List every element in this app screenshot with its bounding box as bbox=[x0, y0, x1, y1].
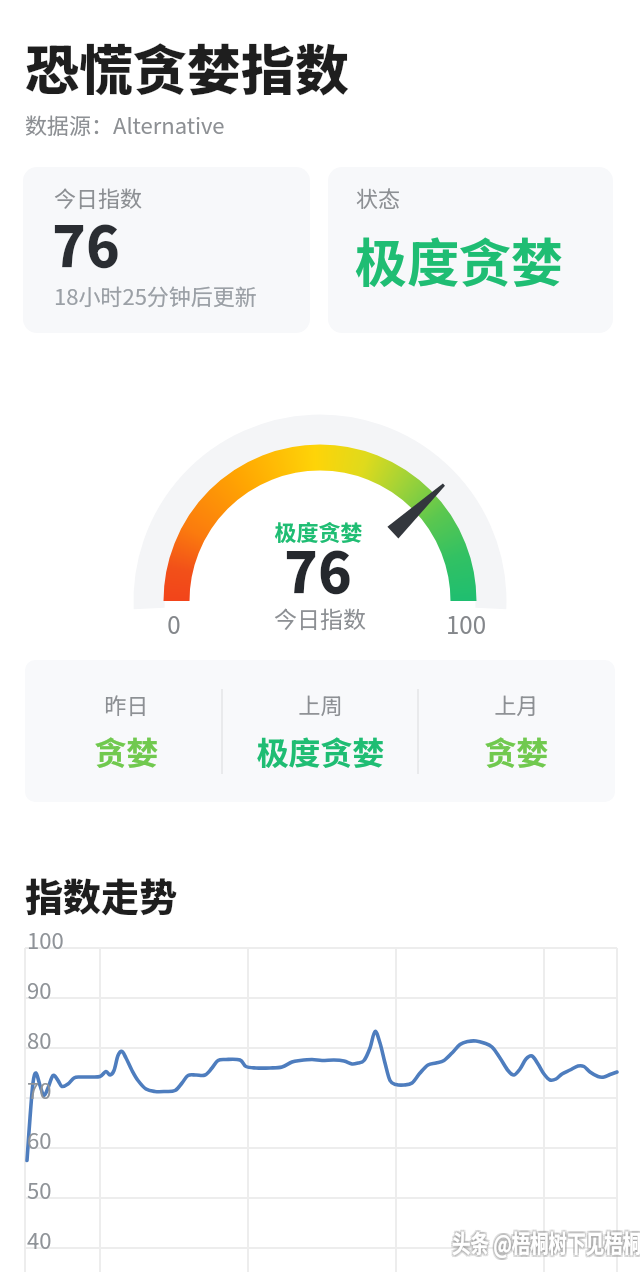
staticText: 100 bbox=[27, 923, 64, 955]
staticText: 今日指数 bbox=[54, 181, 143, 213]
staticText: 今日指数 bbox=[274, 601, 366, 634]
staticText: 贪婪 bbox=[94, 728, 159, 774]
staticText: 指数走势 bbox=[25, 867, 178, 922]
staticText: 80 bbox=[27, 1023, 52, 1055]
staticText: 状态 bbox=[356, 181, 401, 213]
staticText: 70 bbox=[27, 1073, 52, 1105]
staticText: 上月 bbox=[494, 688, 539, 720]
staticText: 头条 @梧桐树下见梧桐 bbox=[453, 1222, 640, 1258]
staticText: 90 bbox=[27, 973, 52, 1005]
staticText: 100 bbox=[446, 606, 486, 641]
staticText: 0 bbox=[167, 606, 181, 641]
button[interactable] bbox=[25, 660, 615, 802]
staticText: 上周 bbox=[298, 688, 343, 720]
staticText: 头条 @梧桐树下见梧桐 bbox=[452, 1226, 640, 1262]
staticText: 极度贪婪 bbox=[355, 222, 564, 297]
staticText: 60 bbox=[27, 1123, 52, 1155]
staticText: 头条 @梧桐树下见梧桐 bbox=[452, 1222, 640, 1258]
staticText: 恐慌贪婪指数 bbox=[25, 27, 349, 105]
staticText: 76 bbox=[284, 528, 352, 609]
button[interactable] bbox=[328, 167, 613, 333]
staticText: 头条 @梧桐树下见梧桐 bbox=[450, 1224, 640, 1260]
staticText: 18小时25分钟后更新 bbox=[54, 279, 257, 311]
staticText: 头条 @梧桐树下见梧桐 bbox=[452, 1224, 640, 1260]
staticText: 40 bbox=[27, 1223, 52, 1255]
button[interactable] bbox=[23, 167, 310, 333]
staticText: 极度贪婪 bbox=[274, 515, 363, 547]
staticText: 头条 @梧桐树下见梧桐 bbox=[453, 1224, 640, 1260]
staticText: 头条 @梧桐树下见梧桐 bbox=[450, 1222, 640, 1258]
staticText: 头条 @梧桐树下见梧桐 bbox=[453, 1226, 640, 1262]
staticText: 头条 @梧桐树下见梧桐 bbox=[450, 1226, 640, 1262]
staticText: 76 bbox=[52, 202, 120, 283]
staticText: 贪婪 bbox=[484, 728, 549, 774]
staticText: 极度贪婪 bbox=[256, 728, 385, 774]
staticText: 昨日 bbox=[104, 688, 149, 720]
staticText: 50 bbox=[27, 1173, 52, 1205]
staticText: 数据源：Alternative bbox=[25, 108, 225, 140]
